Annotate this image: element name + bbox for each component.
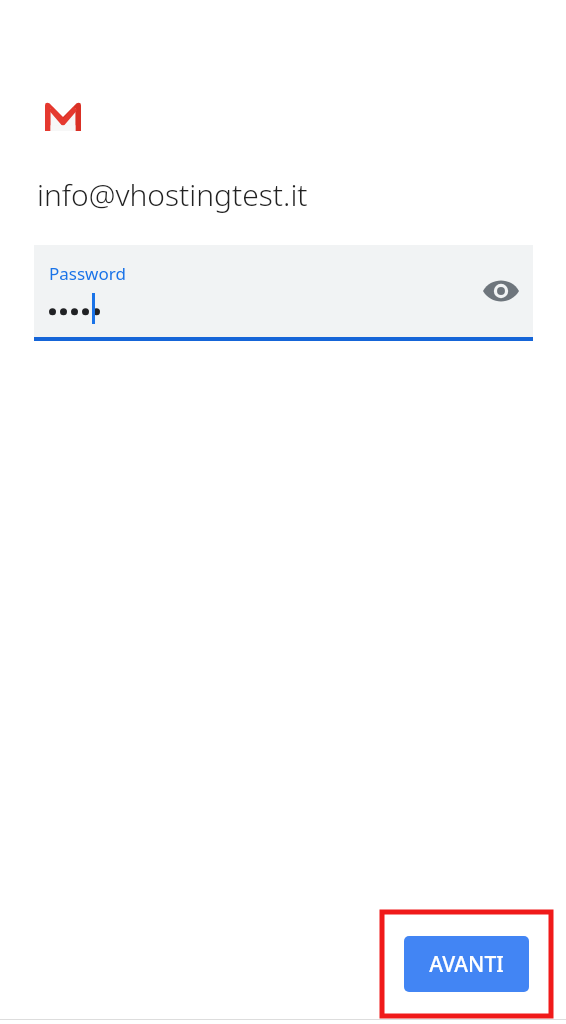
staticText: info@vhostingtest.it bbox=[37, 174, 308, 215]
staticText: AVANTI bbox=[429, 950, 504, 979]
button[interactable]: Show password bbox=[477, 267, 525, 315]
staticText: Password bbox=[49, 262, 126, 285]
button[interactable]: AVANTI bbox=[404, 936, 529, 992]
button[interactable]: Password bbox=[34, 245, 533, 341]
other: Gmail bbox=[45, 102, 81, 131]
